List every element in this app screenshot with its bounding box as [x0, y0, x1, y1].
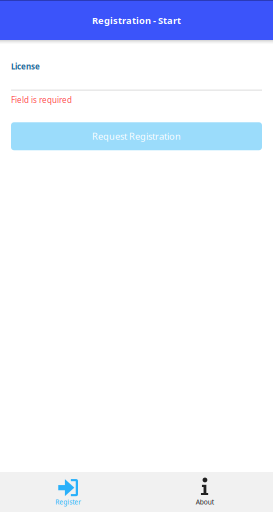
- staticText: License: [11, 61, 40, 72]
- staticText: Request Registration: [92, 130, 181, 142]
- staticText: Registration - Start: [92, 14, 181, 27]
- button[interactable]: Request Registration: [11, 122, 262, 150]
- button[interactable]: License: [11, 44, 262, 91]
- staticText: About: [196, 498, 214, 506]
- staticText: Field is required: [11, 95, 72, 105]
- button[interactable]: Register: [0, 472, 136, 512]
- staticText: Register: [55, 498, 81, 506]
- button[interactable]: About: [136, 472, 273, 512]
